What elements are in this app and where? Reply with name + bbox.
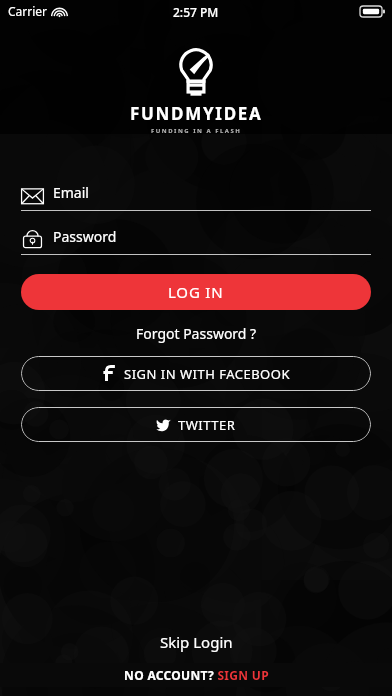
staticText: Password: [53, 227, 117, 246]
button[interactable]: Sign in with Twitter: [21, 407, 371, 442]
staticText: FUNDMYIDEA: [130, 102, 263, 125]
staticText: Email: [53, 183, 89, 202]
staticText: TWITTER: [178, 416, 236, 434]
staticText: Forgot Password ?: [136, 324, 257, 343]
button[interactable]: Email: [21, 181, 371, 208]
staticText: LOG IN: [168, 282, 224, 302]
staticText: SIGN IN WITH FACEBOOK: [124, 365, 290, 383]
button[interactable]: NO ACCOUNT? SIGN UP: [0, 663, 392, 687]
button[interactable]: Password: [21, 225, 371, 252]
staticText: FUNDING IN A FLASH: [151, 127, 242, 135]
button[interactable]: Skip Login: [0, 625, 392, 659]
staticText: Skip Login: [160, 632, 233, 652]
staticText: NO ACCOUNT? SIGN UP: [124, 667, 269, 683]
button[interactable]: Forgot Password ?: [21, 319, 371, 348]
staticText: 2:57 PM: [173, 4, 219, 20]
staticText: Carrier: [8, 3, 48, 19]
button[interactable]: LOG IN: [21, 274, 371, 310]
button[interactable]: Sign in with Facebook: [21, 356, 371, 391]
